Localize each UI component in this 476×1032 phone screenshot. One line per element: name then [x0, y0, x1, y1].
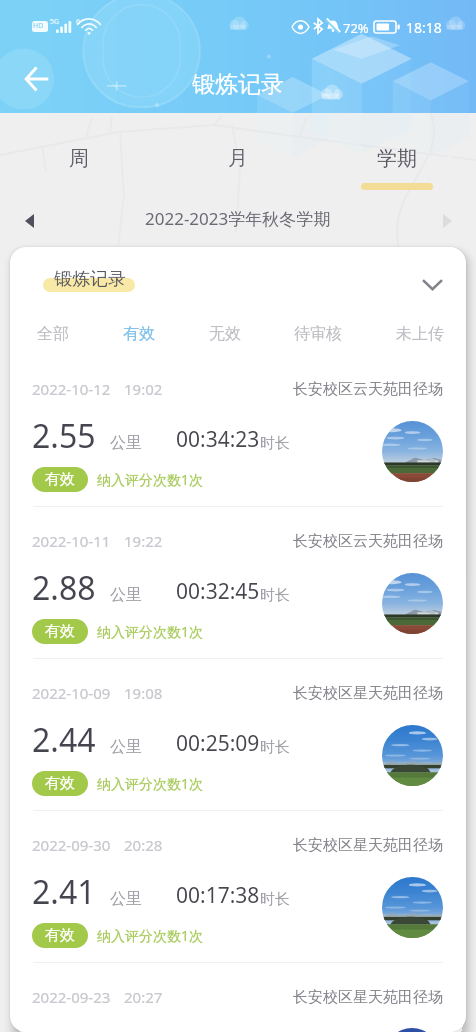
staticText: 长安校区星天苑田径场 [293, 684, 443, 703]
staticText: 2022-09-30 [32, 835, 111, 855]
button[interactable]: 2022-09-30 [10, 811, 466, 962]
staticText: 2.41 [32, 870, 96, 914]
button[interactable]: 无效 [201, 318, 249, 350]
staticText: 公里 [110, 585, 142, 605]
staticText: 19:02 [124, 379, 163, 399]
staticText: 2.44 [32, 718, 96, 762]
staticText: 2022-10-12 [32, 379, 111, 399]
staticText: 纳入评分次数1次 [97, 622, 204, 641]
staticText: 全部 [37, 324, 69, 344]
staticText: 长安校区星天苑田径场 [293, 836, 443, 855]
staticText: 无效 [209, 324, 241, 344]
staticText: 00:32:45 [176, 577, 260, 606]
button[interactable]: 有效 [115, 318, 163, 350]
staticText: 72% [343, 19, 369, 37]
button[interactable]: Previous semester [12, 204, 46, 238]
button[interactable]: Next semester [430, 204, 464, 238]
staticText: 00:25:09 [176, 729, 260, 758]
staticText: 2.88 [32, 566, 96, 610]
staticText: 有效 [123, 324, 155, 344]
staticText: 有效 [45, 622, 75, 641]
staticText: 有效 [45, 926, 75, 945]
staticText: 纳入评分次数1次 [97, 470, 204, 489]
staticText: 2.55 [32, 414, 96, 458]
button[interactable]: 未上传 [388, 318, 452, 350]
staticText: 公里 [110, 889, 142, 909]
staticText: 有效 [45, 774, 75, 793]
staticText: 2022-2023学年秋冬学期 [145, 207, 331, 230]
staticText: 时长 [260, 890, 290, 909]
staticText: 锻炼记录 [192, 70, 284, 99]
button[interactable]: Add record [385, 1028, 439, 1032]
button[interactable]: Back [14, 56, 60, 102]
staticText: 19:22 [124, 531, 163, 551]
staticText: 时长 [260, 586, 290, 605]
staticText: 时长 [260, 738, 290, 757]
button[interactable]: 2022-10-12 [10, 355, 466, 506]
button[interactable]: 待审核 [286, 318, 350, 350]
staticText: 6 [76, 17, 81, 27]
staticText: 纳入评分次数1次 [97, 926, 204, 945]
button[interactable]: 周 [0, 113, 158, 197]
staticText: 时长 [260, 434, 290, 453]
staticText: 纳入评分次数1次 [97, 774, 204, 793]
staticText: 00:17:38 [176, 881, 260, 910]
staticText: 长安校区云天苑田径场 [293, 532, 443, 551]
staticText: 待审核 [294, 324, 342, 344]
staticText: 20:27 [124, 987, 163, 1007]
button[interactable]: 学期 [317, 113, 476, 197]
staticText: 2022-10-11 [32, 531, 111, 551]
staticText: 2022-10-09 [32, 683, 111, 703]
button[interactable]: 全部 [29, 318, 77, 350]
staticText: 20:28 [124, 835, 163, 855]
staticText: 18:18 [406, 18, 442, 37]
staticText: 00:34:23 [176, 425, 260, 454]
staticText: 5G [50, 17, 60, 27]
button[interactable]: 2022-10-09 [10, 659, 466, 810]
staticText: 2022-09-23 [32, 987, 111, 1007]
staticText: 19:08 [124, 683, 163, 703]
staticText: 公里 [110, 433, 142, 453]
button[interactable]: Collapse [414, 266, 450, 302]
staticText: 长安校区云天苑田径场 [293, 380, 443, 399]
button[interactable]: 2022-10-11 [10, 507, 466, 658]
staticText: HD [33, 21, 44, 31]
staticText: 学期 [377, 146, 417, 171]
staticText: 未上传 [396, 324, 444, 344]
button[interactable]: 月 [158, 113, 317, 197]
staticText: 有效 [45, 470, 75, 489]
staticText: 公里 [110, 737, 142, 757]
button[interactable]: 2022-09-23 [10, 963, 466, 1032]
staticText: 锻炼记录 [54, 268, 126, 291]
staticText: 长安校区星天苑田径场 [293, 988, 443, 1007]
staticText: 周 [69, 146, 89, 171]
staticText: 月 [228, 146, 248, 171]
